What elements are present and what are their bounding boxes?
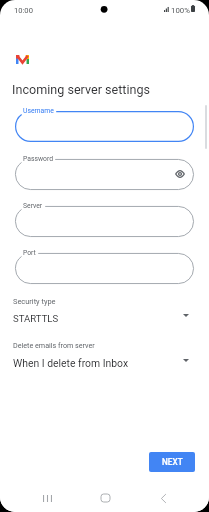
staticText: Delete emails from server [13,341,95,349]
staticText: Incoming server settings [12,82,151,97]
staticText: Username [23,107,54,115]
staticText: Server [23,202,43,210]
staticText: 10:00 [14,6,33,15]
staticText: Port [23,249,36,257]
button[interactable]: Username [15,111,194,142]
button[interactable]: Security type [0,297,209,327]
button[interactable]: Home [91,484,119,512]
button[interactable]: Password [15,159,194,190]
button[interactable]: Show password [174,168,185,179]
staticText: Security type [13,297,56,306]
button[interactable]: Recent apps [33,484,61,512]
staticText: Password [23,155,54,163]
staticText: NEXT [162,457,183,467]
button[interactable]: Server [15,206,194,237]
staticText: When I delete from Inbox [13,357,129,369]
button[interactable]: Delete emails from server [0,341,209,371]
button[interactable]: Back [149,484,177,512]
staticText: 100% [171,6,190,15]
button[interactable]: NEXT [149,452,195,472]
staticText: STARTTLS [13,313,59,324]
button[interactable]: Port [15,253,194,284]
